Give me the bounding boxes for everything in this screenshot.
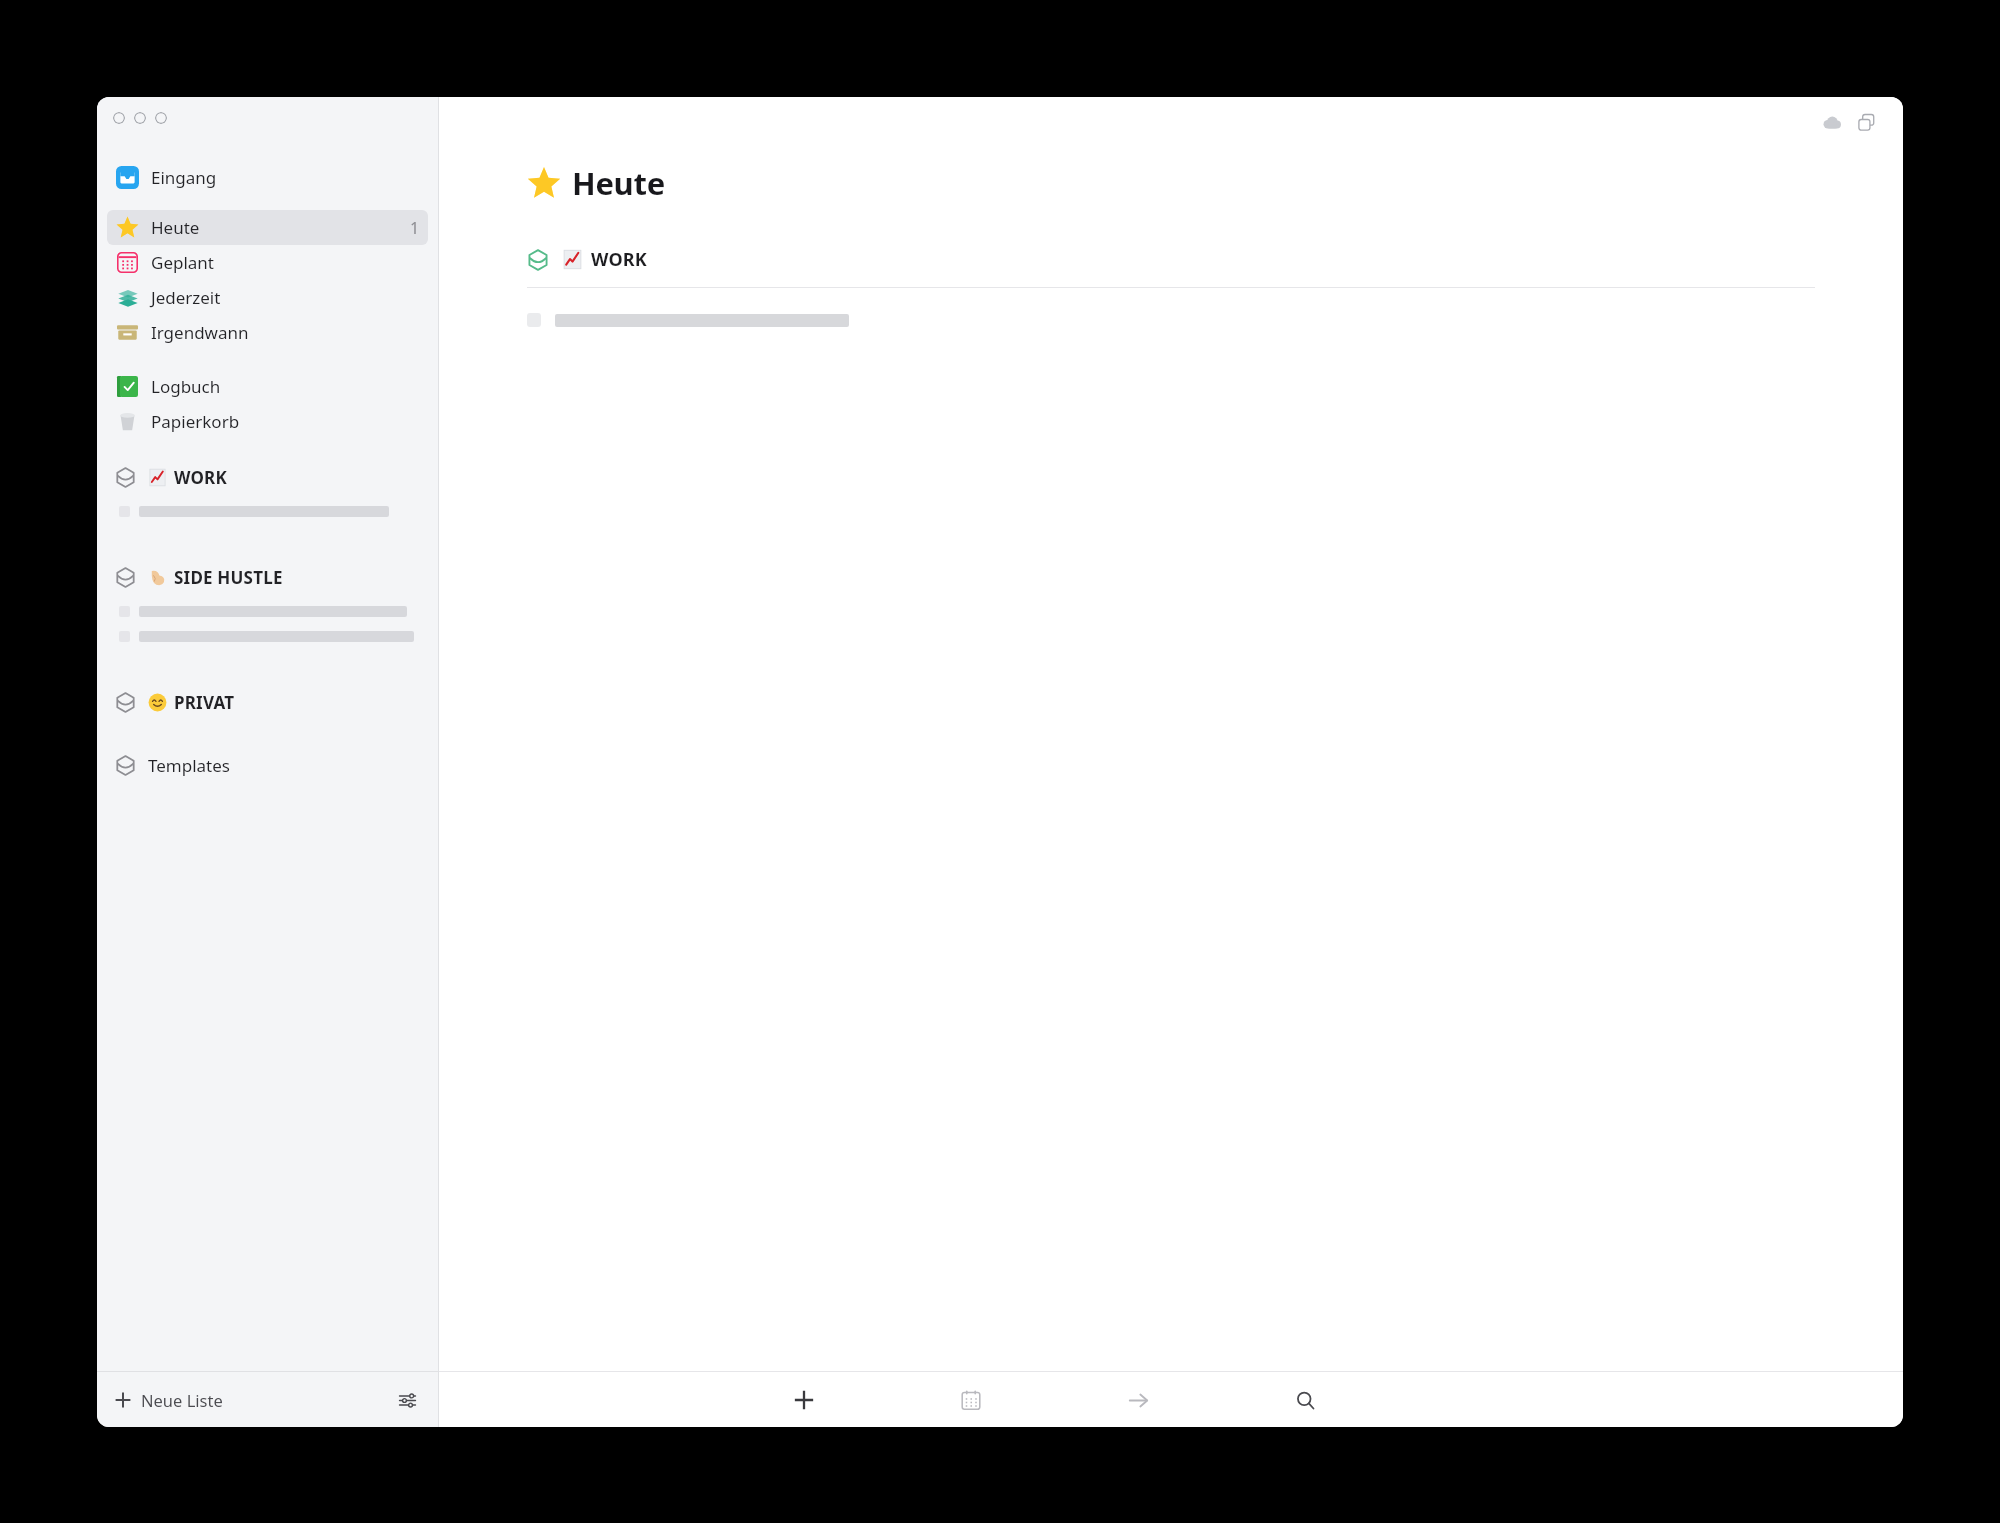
staticText: WORK xyxy=(174,466,227,489)
staticText: Papierkorb xyxy=(151,410,240,433)
button[interactable]: PRIVAT xyxy=(97,686,438,719)
staticText: Irgendwann xyxy=(151,321,249,344)
button[interactable]: SIDE HUSTLE xyxy=(97,561,438,594)
staticText: WORK xyxy=(591,247,648,272)
button[interactable]: Move xyxy=(1118,1380,1158,1420)
staticText: Neue Liste xyxy=(141,1389,223,1411)
button[interactable]: Window control xyxy=(113,112,125,124)
button[interactable]: New To-Do xyxy=(784,1380,824,1420)
button[interactable]: Window control xyxy=(155,112,167,124)
button[interactable]: Search xyxy=(1285,1380,1325,1420)
staticText: SIDE HUSTLE xyxy=(174,566,283,589)
staticText: 1 xyxy=(410,217,420,239)
staticText: Heute xyxy=(572,162,665,204)
button[interactable]: WORK xyxy=(97,461,438,494)
button[interactable]: Templates xyxy=(97,749,438,782)
button[interactable]: Geplant xyxy=(107,245,428,280)
button[interactable]: Settings xyxy=(392,1385,422,1415)
staticText: Geplant xyxy=(151,251,214,274)
staticText: PRIVAT xyxy=(174,691,235,714)
staticText: Jederzeit xyxy=(151,286,221,309)
button[interactable]: Jederzeit xyxy=(107,280,428,315)
button[interactable]: Eingang xyxy=(107,160,428,195)
button[interactable]: Neue Liste xyxy=(113,1381,225,1419)
button[interactable]: Cloud sync xyxy=(1816,107,1846,137)
button[interactable]: Schedule xyxy=(951,1380,991,1420)
button[interactable]: Logbuch xyxy=(107,369,428,404)
staticText: Templates xyxy=(148,754,230,777)
staticText: Eingang xyxy=(151,166,217,189)
button[interactable]: Irgendwann xyxy=(107,315,428,350)
button[interactable]: Papierkorb xyxy=(107,404,428,439)
button[interactable]: WORK xyxy=(527,247,648,272)
button[interactable]: Heute xyxy=(107,210,428,245)
button[interactable]: Window control xyxy=(134,112,146,124)
staticText: Logbuch xyxy=(151,375,221,398)
button[interactable]: New window xyxy=(1851,107,1881,137)
button[interactable]: Heute xyxy=(527,162,665,204)
staticText: Heute xyxy=(151,216,200,239)
